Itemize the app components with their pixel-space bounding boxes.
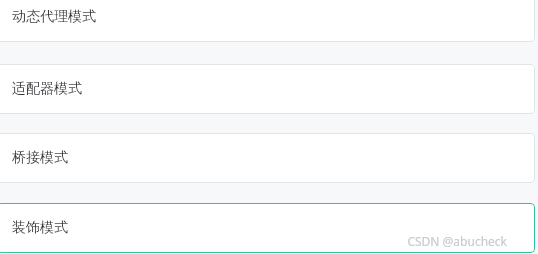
button[interactable]: 动态代理模式 xyxy=(0,0,535,42)
staticText: 装饰模式 xyxy=(12,219,68,237)
button[interactable]: 桥接模式 xyxy=(0,133,535,183)
button[interactable]: 装饰模式 xyxy=(0,203,535,253)
staticText: CSDN @abucheck xyxy=(407,233,507,249)
staticText: 桥接模式 xyxy=(12,149,68,167)
staticText: 动态代理模式 xyxy=(12,8,96,26)
button[interactable]: 适配器模式 xyxy=(0,64,535,114)
staticText: 适配器模式 xyxy=(12,80,82,98)
